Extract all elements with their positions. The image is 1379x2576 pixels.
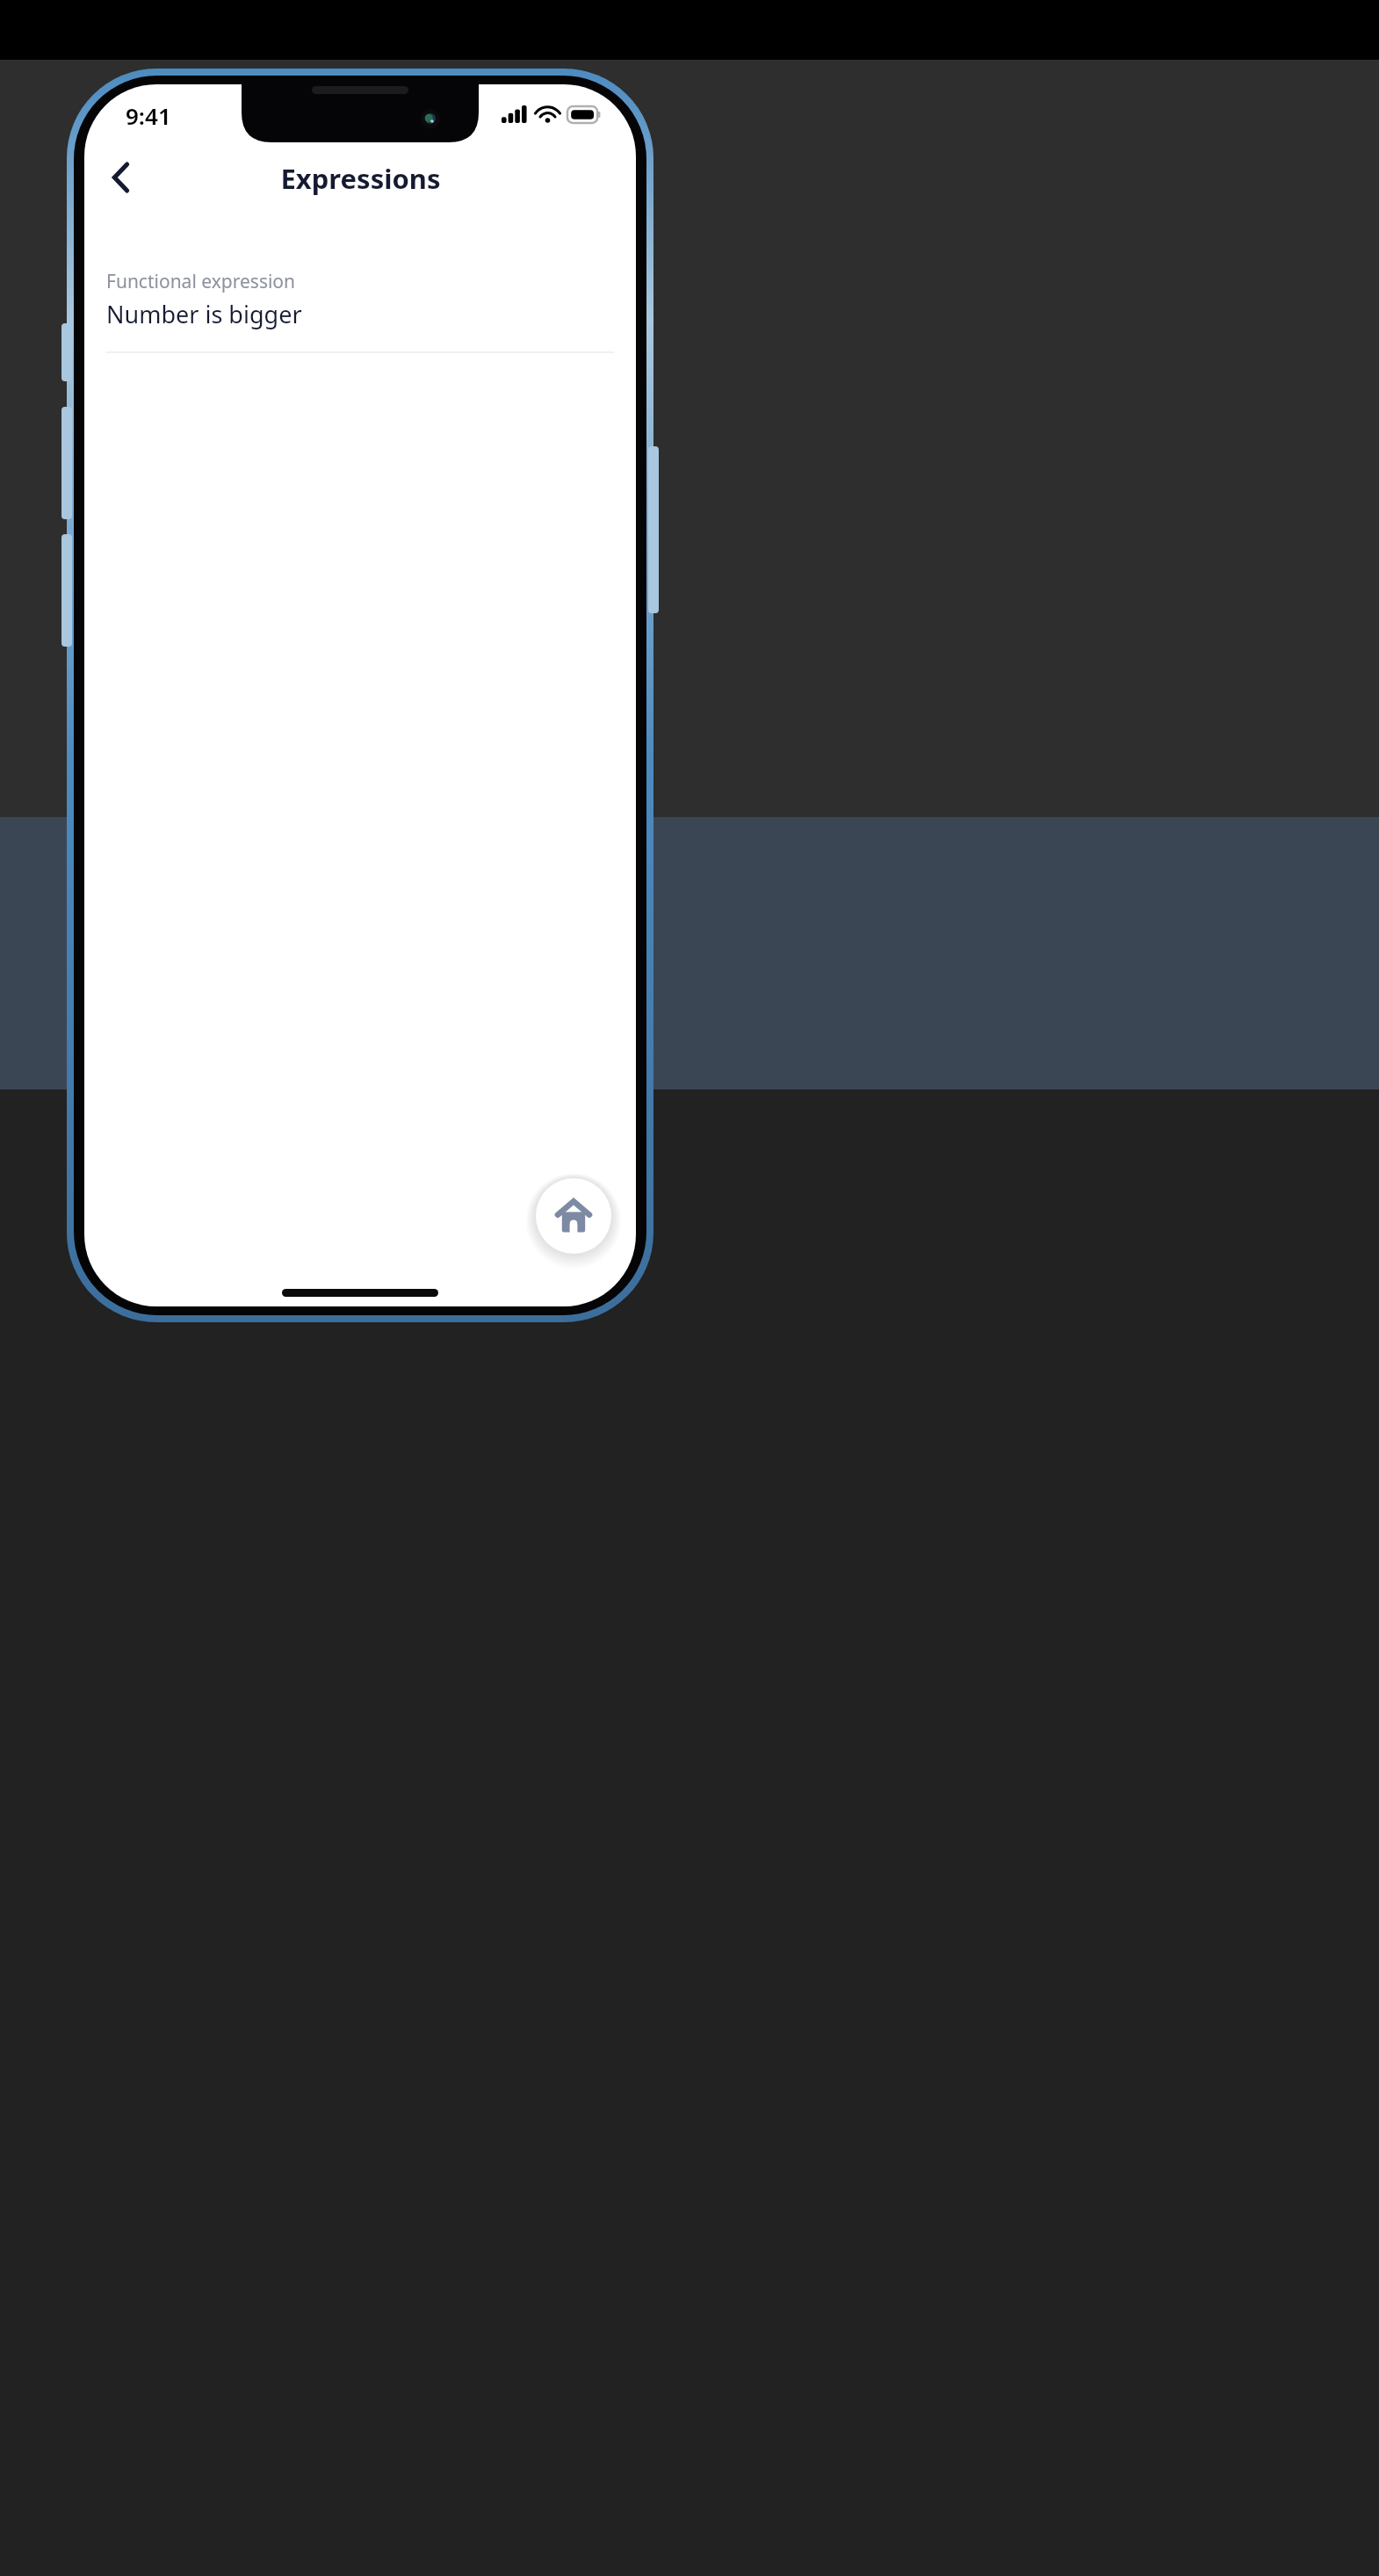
staticText: Expressions <box>280 160 441 197</box>
button[interactable]: Functional expression <box>84 269 636 353</box>
staticText: 9:41 <box>126 100 171 131</box>
staticText: Functional expression <box>106 269 296 294</box>
staticText: Number is bigger <box>106 298 302 330</box>
button[interactable]: Back <box>97 154 144 201</box>
button[interactable]: Home <box>536 1178 611 1254</box>
